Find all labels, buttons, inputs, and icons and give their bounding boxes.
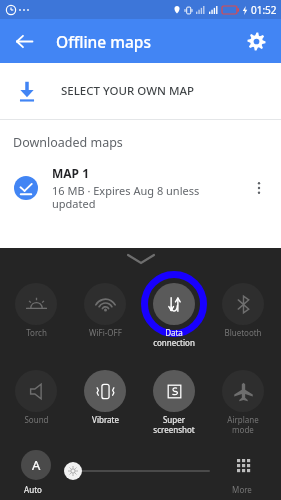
staticText: Data connection xyxy=(153,327,195,348)
button[interactable]: MAP 1 xyxy=(0,163,281,213)
button[interactable]: WiFi-OFF xyxy=(84,283,126,325)
button[interactable]: More options xyxy=(241,170,277,206)
staticText: Bluetooth xyxy=(224,327,262,338)
button[interactable]: Bluetooth xyxy=(222,283,264,325)
staticText: Auto xyxy=(24,484,42,495)
staticText: 01:52 xyxy=(251,3,277,17)
button[interactable]: More xyxy=(230,452,258,480)
staticText: Vibrate xyxy=(92,414,119,425)
staticText: More xyxy=(232,484,252,495)
button[interactable]: Sound xyxy=(15,370,57,412)
staticText: SELECT YOUR OWN MAP xyxy=(61,83,195,99)
button[interactable]: A xyxy=(21,450,51,480)
button[interactable]: Brightness xyxy=(64,462,82,480)
staticText: MAP 1 xyxy=(52,165,90,181)
staticText: 16 MB · Expires Aug 8 unless updated xyxy=(52,183,241,212)
button[interactable]: Airplane mode xyxy=(222,370,264,412)
button[interactable]: SELECT YOUR OWN MAP xyxy=(0,63,281,119)
button[interactable]: Torch xyxy=(15,283,57,325)
button[interactable]: Back xyxy=(4,21,44,61)
staticText: Super screenshot xyxy=(153,414,195,435)
button[interactable]: Super screenshot xyxy=(153,370,195,412)
button[interactable]: Vibrate xyxy=(84,370,126,412)
staticText: Airplane mode xyxy=(227,414,259,435)
button[interactable]: Data connection xyxy=(153,283,195,325)
button[interactable]: Settings xyxy=(236,21,276,61)
staticText: A xyxy=(32,456,41,474)
staticText: Sound xyxy=(24,414,49,425)
staticText: Downloaded maps xyxy=(13,134,123,151)
staticText: Torch xyxy=(26,327,47,338)
staticText: WiFi-OFF xyxy=(89,327,122,338)
staticText: Offline maps xyxy=(56,31,151,52)
